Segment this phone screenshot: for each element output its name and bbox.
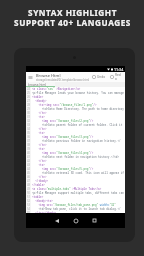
staticText: <tbody> [32, 99, 47, 103]
staticText: 31 [27, 115, 30, 119]
staticText: 54 [27, 207, 30, 211]
staticText: 45 [27, 171, 30, 175]
staticText: </tr> [32, 127, 47, 131]
staticText: </tr> [32, 111, 47, 115]
staticText: 34 [27, 127, 30, 131]
staticText: <img src="/browse_files/3.png"/> [32, 135, 94, 139]
staticText: 51 [27, 195, 30, 199]
staticText: 39 [27, 147, 30, 151]
staticText: <td>Goto Home Directory. The path to hom… [32, 107, 125, 111]
staticText: </table> [32, 183, 45, 187]
staticText: </tr> [32, 175, 47, 179]
staticText: 44 [27, 167, 30, 171]
staticText: <p>File Manager leads your browse histor… [32, 91, 125, 95]
staticText: Undo [97, 75, 106, 79]
staticText: </tr> [32, 159, 47, 163]
staticText: SYNTAX HIGHLIGHT [28, 7, 117, 18]
button[interactable]: Menu [28, 75, 33, 80]
staticText: <td>Goto previous folder in navigation h… [32, 139, 125, 143]
staticText: 32 [27, 119, 30, 123]
staticText: 36 [27, 135, 30, 139]
staticText: Browse Html [36, 73, 61, 78]
staticText: 40 [27, 151, 30, 155]
staticText: 41 [27, 155, 30, 159]
staticText: 26 [27, 95, 30, 99]
staticText: 25 [27, 91, 30, 95]
staticText: <a class="sos" >Navigation</a> [32, 87, 81, 91]
staticText: 24 [27, 87, 30, 91]
button[interactable]: Undo [92, 75, 106, 79]
staticText: 38 [27, 143, 30, 147]
staticText: 30 [27, 111, 30, 115]
staticText: <td>Goto parent folder of current folder… [32, 123, 125, 127]
staticText: <table> [32, 195, 44, 199]
staticText: <td>Show tab pane, click it to launch ta… [32, 207, 125, 211]
staticText: 29 [27, 107, 30, 111]
button[interactable]: Redo [110, 73, 121, 81]
staticText: <img src="/browse_files/4.png"/> [32, 151, 94, 155]
staticText: SUPPORT 40+ LANGUAGES [14, 17, 131, 28]
staticText: 11:34 [114, 67, 124, 72]
staticText: <td>Goto next folder in navigation histo… [32, 155, 120, 159]
staticText: 49 [27, 187, 30, 191]
staticText: 53 [27, 203, 30, 207]
button[interactable]: Recents [88, 214, 101, 227]
staticText: <td>Goto external SD card. This icon wil… [32, 171, 125, 175]
staticText: 48 [27, 183, 30, 187]
staticText: 50 [27, 191, 30, 195]
staticText: </tr></tbody> [32, 211, 57, 213]
staticText: </tr> [32, 143, 47, 147]
staticText: <tbody><tr> [32, 199, 53, 203]
staticText: <table> [32, 95, 44, 99]
staticText: 28 [27, 103, 30, 107]
staticText: 27 [27, 99, 30, 103]
button[interactable]: browse.html [26, 82, 55, 87]
staticText: <img src="/browse_files/tab_pane.png" wi… [32, 203, 125, 207]
staticText: <tr> [32, 163, 45, 167]
staticText: 52 [27, 199, 30, 203]
staticText: Redo [115, 73, 121, 81]
staticText: 42 [27, 159, 30, 163]
staticText: <img src="/browse_files/5.png"/> [32, 167, 94, 171]
staticText: <tr> [32, 131, 45, 135]
staticText: <tr> [32, 147, 45, 151]
staticText: 35 [27, 131, 30, 135]
staticText: 37 [27, 139, 30, 143]
staticText: </tbody> [32, 179, 49, 183]
staticText: browse.html [28, 83, 47, 87]
staticText: <tr><img src="/browse_files/1.png"/> [32, 103, 97, 107]
staticText: storage/emulated/0/.template/browse.html [36, 78, 90, 82]
staticText: <a class="multiple-tabs" >Multiple Tabs<… [32, 187, 102, 191]
staticText: <tr> [32, 115, 45, 119]
button[interactable]: Back [50, 214, 63, 227]
staticText: <p>File Manager support multiple tabs, d… [32, 191, 125, 195]
button[interactable]: Home [69, 214, 82, 227]
staticText: <img src="/browse_files/2.png"/> [32, 119, 94, 123]
staticText: 43 [27, 163, 30, 167]
staticText: 47 [27, 179, 30, 183]
staticText: 33 [27, 123, 30, 127]
staticText: 46 [27, 175, 30, 179]
